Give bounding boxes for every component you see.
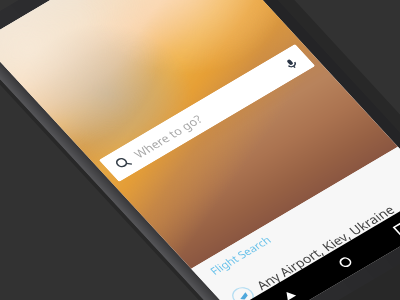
staticText: Flight Search bbox=[206, 232, 274, 278]
button[interactable]: Back bbox=[272, 281, 306, 300]
staticText: Any Airport, Kiev, Ukraine bbox=[252, 201, 399, 293]
staticText: Where to go? bbox=[130, 111, 206, 161]
button[interactable]: Any Airport, Kiev, Ukraine bbox=[216, 173, 400, 300]
button[interactable]: Where to go? bbox=[99, 44, 315, 182]
button[interactable]: Recents bbox=[385, 215, 400, 242]
button[interactable]: Home bbox=[328, 248, 362, 276]
button[interactable]: Voice search bbox=[280, 54, 303, 73]
